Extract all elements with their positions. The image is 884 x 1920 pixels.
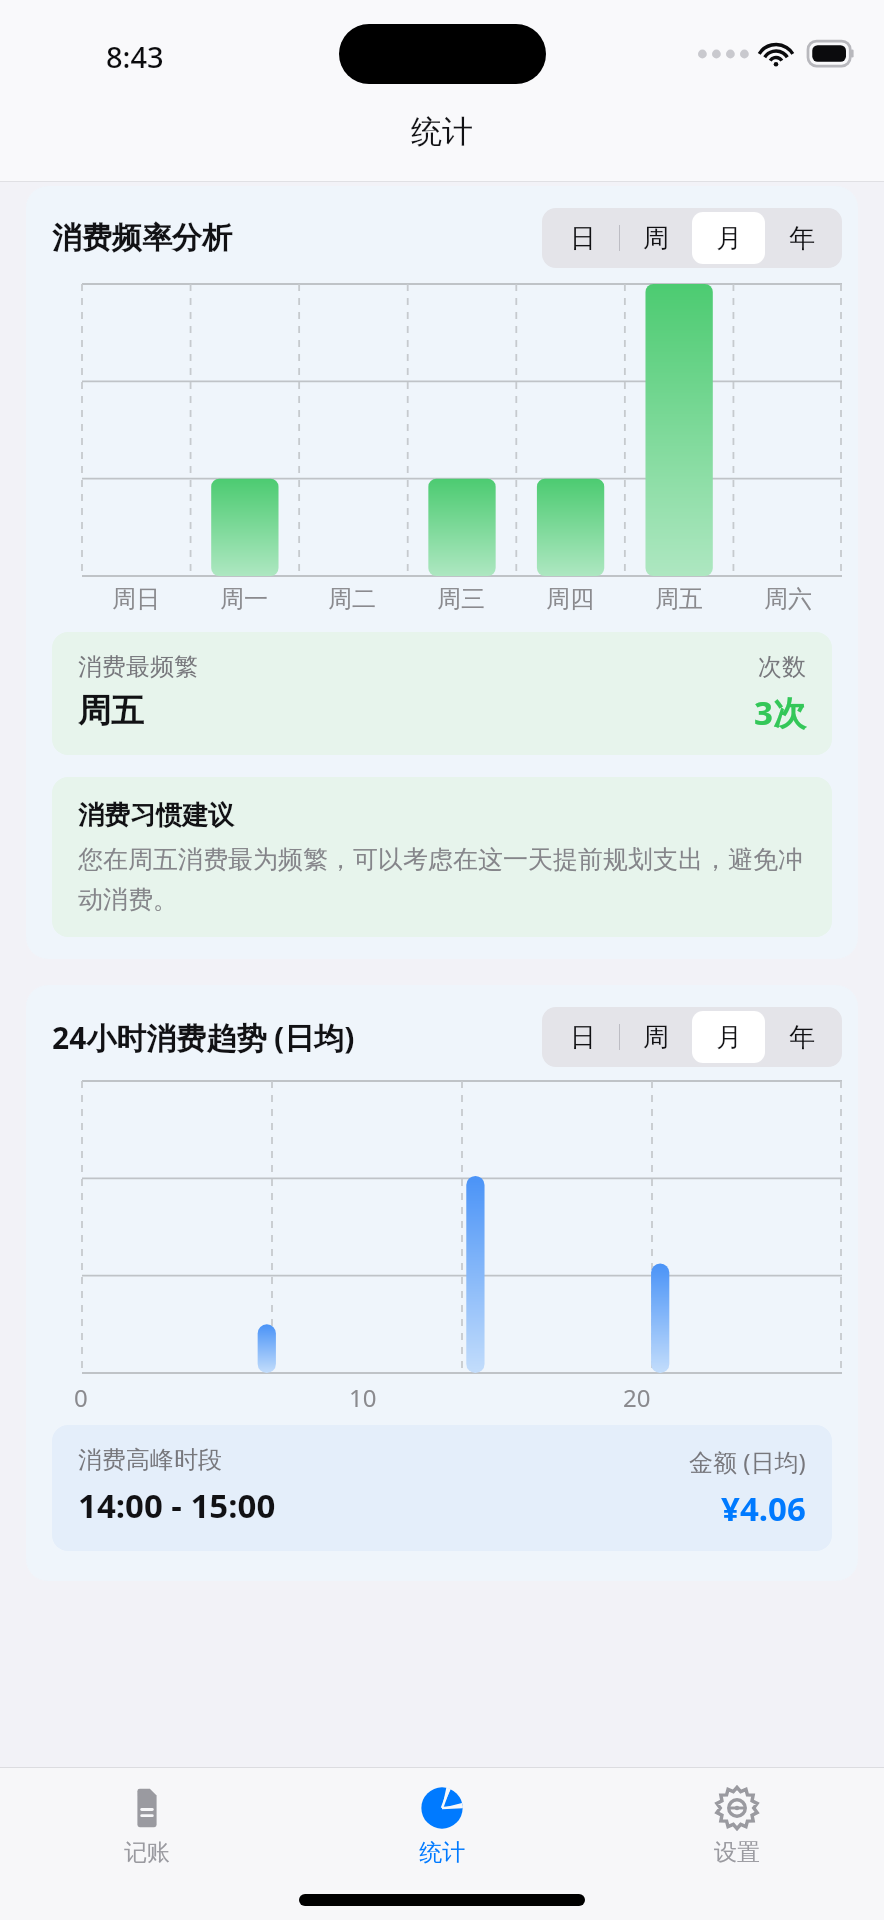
button[interactable]: 消费习惯建议 [52,777,832,937]
staticText: 月 [716,222,742,255]
staticText: 消费频率分析 [52,219,232,257]
staticText: 14:00 - 15:00 [78,1483,276,1528]
staticText: 3次 [754,690,806,735]
button[interactable]: 周 [619,212,692,264]
button[interactable]: 记账 [0,1780,294,1871]
staticText: 消费最频繁 [78,652,198,682]
button[interactable]: 月 [692,1011,765,1063]
staticText: 您在周五消费最为频繁，可以考虑在这一天提前规划支出，避免冲动消费。 [78,844,806,915]
staticText: 日 [570,1021,596,1054]
staticText: 10 [349,1381,377,1411]
staticText: 0 [74,1381,88,1411]
staticText: 记账 [124,1838,170,1867]
button[interactable]: 日 [546,1011,619,1063]
staticText: 周 [643,1021,669,1054]
staticText: 周五 [655,584,703,614]
staticText: 周二 [328,584,376,614]
staticText: 周 [643,222,669,255]
staticText: 8:43 [106,37,164,76]
button[interactable]: 日 [546,212,619,264]
staticText: 年 [789,1021,815,1054]
button[interactable]: 年 [765,212,838,264]
staticText: 设置 [714,1838,760,1867]
button[interactable]: 周 [619,1011,692,1063]
staticText: 20 [623,1381,651,1411]
staticText: 统计 [411,112,473,151]
staticText: ¥4.06 [721,1486,806,1531]
staticText: 日 [570,222,596,255]
staticText: 周日 [112,584,160,614]
staticText: 周四 [546,584,594,614]
button[interactable]: 统计 [294,1780,589,1871]
staticText: 消费高峰时段 [78,1445,222,1475]
staticText: 周五 [78,690,144,732]
staticText: 周一 [220,584,268,614]
button[interactable]: 月 [692,212,765,264]
staticText: 24小时消费趋势 (日均) [52,1017,355,1058]
button[interactable]: 年 [765,1011,838,1063]
staticText: 次数 [758,652,806,682]
staticText: 周三 [437,584,485,614]
staticText: 消费习惯建议 [78,799,234,832]
button[interactable]: 消费最频繁 [52,632,832,755]
button[interactable]: 消费高峰时段 [52,1425,832,1551]
staticText: 金额 (日均) [689,1445,806,1478]
staticText: 统计 [419,1838,465,1867]
staticText: 月 [716,1021,742,1054]
staticText: 周六 [764,584,812,614]
staticText: 年 [789,222,815,255]
button[interactable]: 设置 [589,1780,884,1871]
